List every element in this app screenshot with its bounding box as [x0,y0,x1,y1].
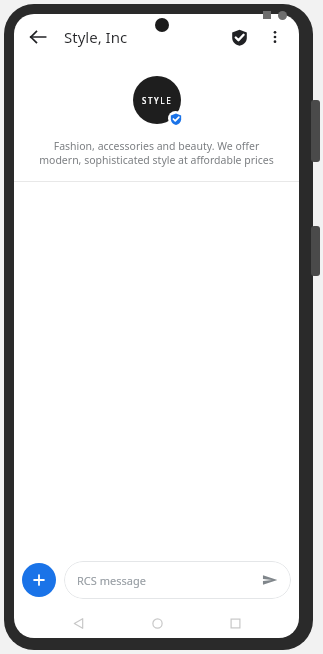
staticText: Style, Inc [64,27,128,47]
button[interactable]: More options [257,19,293,55]
button[interactable]: RCS message [64,561,291,599]
button[interactable]: Send [257,567,283,593]
staticText: Fashion, accessories and beauty. We offe… [38,139,275,167]
button[interactable]: Home [142,608,172,638]
button[interactable]: Verified business [221,19,257,55]
button[interactable]: Back [63,608,93,638]
button[interactable]: Recents [220,608,250,638]
staticText: STYLE [142,95,173,106]
button[interactable]: Back [20,19,56,55]
button[interactable]: Add attachment [22,563,56,597]
staticText: RCS message [77,573,146,588]
